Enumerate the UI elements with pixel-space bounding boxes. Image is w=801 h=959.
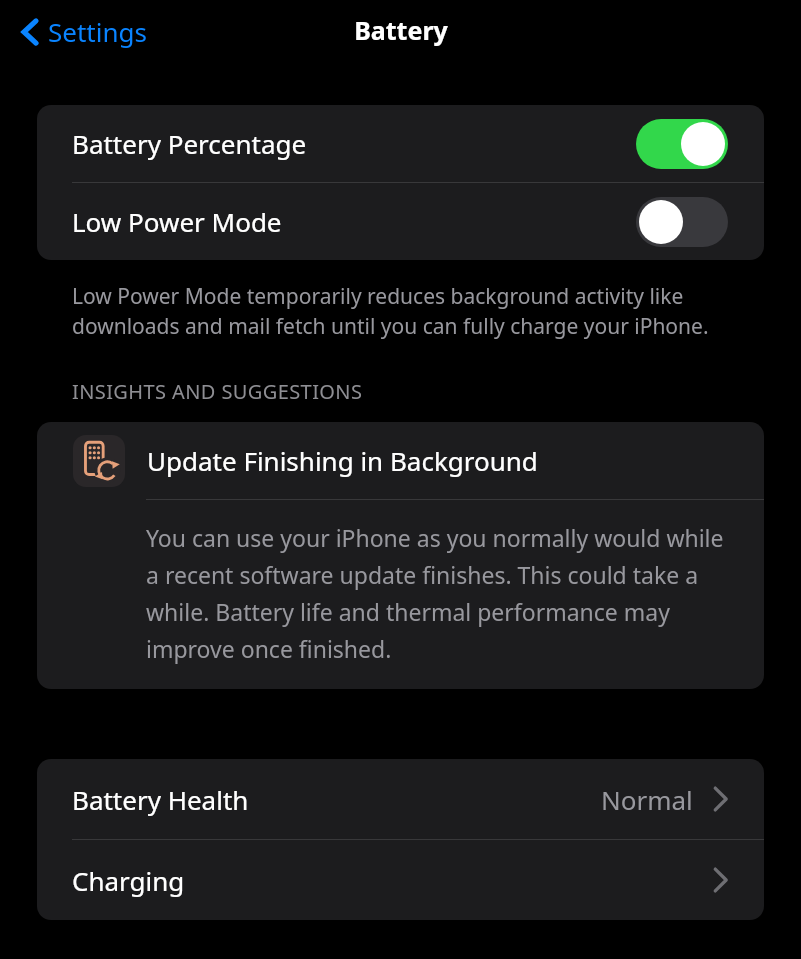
- other: Toggle on: [636, 119, 728, 169]
- button[interactable]: Battery Health: [37, 759, 764, 839]
- staticText: Normal: [601, 782, 693, 817]
- staticText: Low Power Mode: [72, 204, 282, 239]
- button[interactable]: Charging: [37, 840, 764, 920]
- staticText: Battery Percentage: [72, 126, 307, 161]
- staticText: INSIGHTS AND SUGGESTIONS: [72, 378, 363, 405]
- staticText: You can use your iPhone as you normally …: [146, 522, 742, 665]
- staticText: Battery Health: [72, 782, 249, 817]
- staticText: Charging: [72, 863, 185, 898]
- button[interactable]: Battery Percentage: [37, 105, 764, 182]
- other: Toggle off: [636, 197, 728, 247]
- button[interactable]: Settings: [14, 10, 153, 53]
- staticText: Battery: [354, 13, 448, 47]
- button[interactable]: Low Power Mode: [37, 183, 764, 260]
- button[interactable]: Update Finishing in Background: [37, 422, 764, 689]
- staticText: Settings: [48, 14, 147, 49]
- staticText: Update Finishing in Background: [147, 443, 538, 478]
- staticText: Low Power Mode temporarily reduces backg…: [72, 282, 729, 340]
